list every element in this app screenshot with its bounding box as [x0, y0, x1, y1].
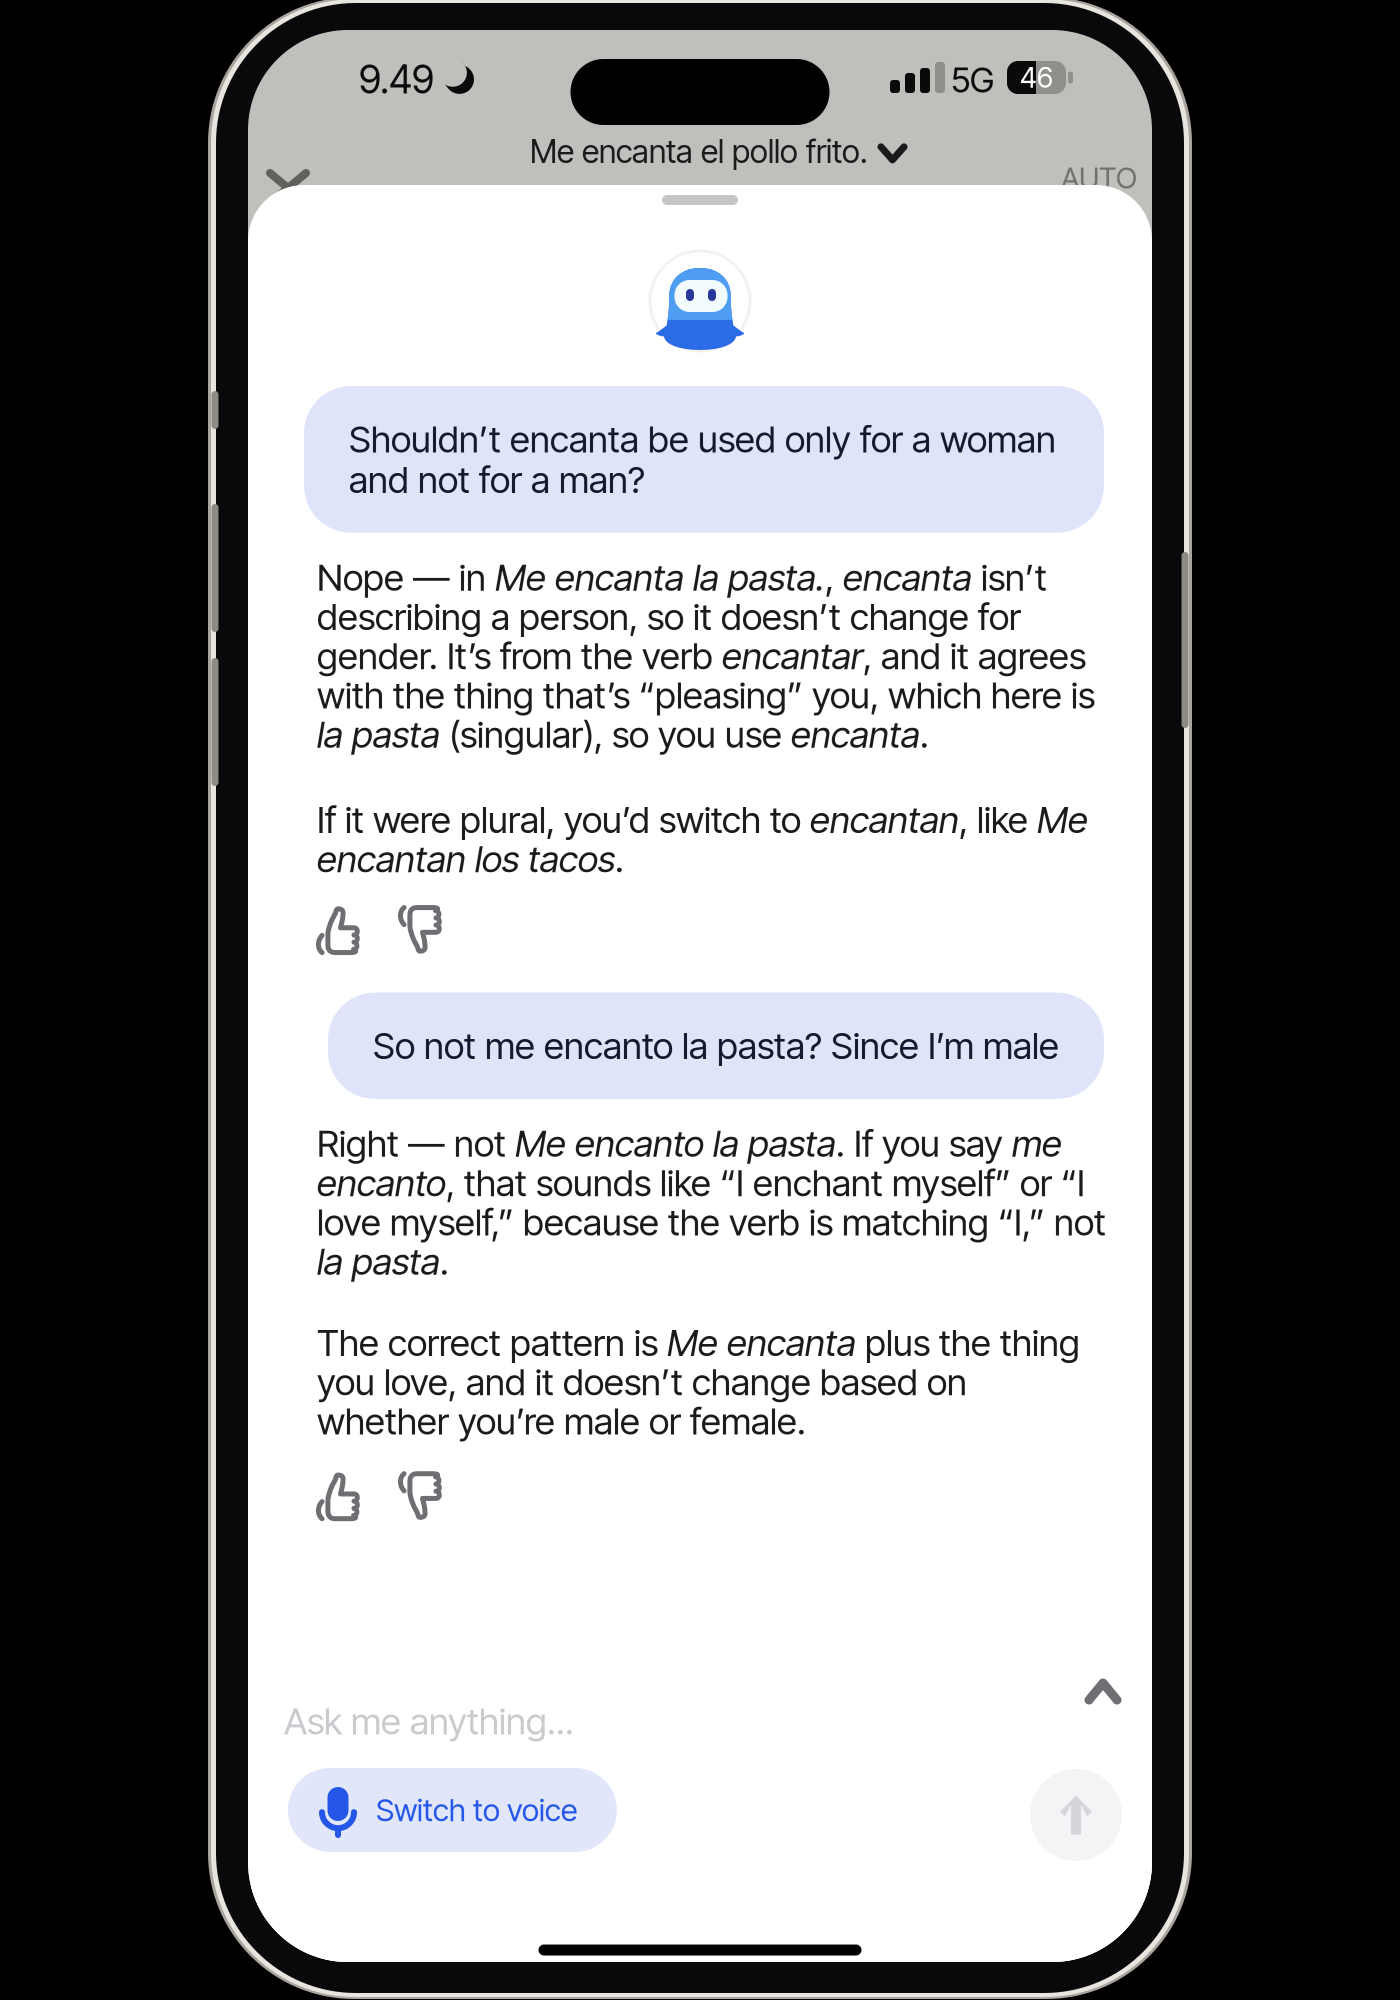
staticText: Ask me anything... — [284, 1699, 574, 1743]
staticText: Shouldn’t encanta be used only for a wom… — [349, 417, 1056, 502]
staticText: Right — not Me encanto la pasta. If you … — [317, 1122, 1106, 1283]
button[interactable]: Good response — [317, 907, 359, 952]
button[interactable]: Bad response — [399, 907, 441, 952]
staticText: The correct pattern is Me encanta plus t… — [317, 1321, 1080, 1443]
button[interactable]: Send — [1030, 1769, 1122, 1861]
staticText: Switch to voice — [376, 1791, 577, 1828]
button[interactable]: AUTO — [1051, 150, 1147, 205]
staticText: If it were plural, you’d switch to encan… — [317, 798, 1088, 880]
button[interactable]: Expand composer — [1067, 1661, 1139, 1722]
button[interactable]: Bad response — [399, 1474, 441, 1519]
staticText: 46 — [1020, 61, 1053, 94]
button[interactable]: Me encanta el pollo frito. — [530, 126, 904, 177]
staticText: 5G — [951, 59, 994, 101]
button[interactable]: Good response — [317, 1474, 359, 1519]
staticText: 9.49 — [359, 56, 434, 103]
staticText: Nope — in Me encanta la pasta., encanta … — [317, 556, 1095, 756]
staticText: Me encanta el pollo frito. — [530, 132, 868, 171]
staticText: So not me encanto la pasta? Since I’m ma… — [373, 1023, 1059, 1068]
button[interactable]: Close — [254, 157, 322, 219]
staticText: AUTO — [1061, 160, 1137, 195]
button[interactable]: Switch to voice — [288, 1768, 617, 1852]
